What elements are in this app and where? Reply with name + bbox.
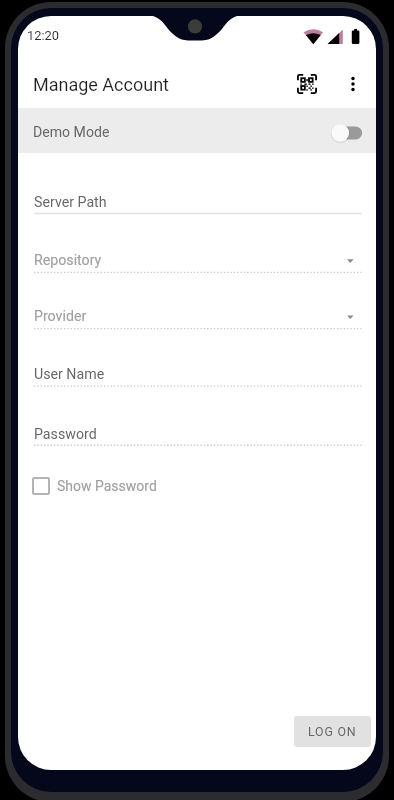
button[interactable] (34, 414, 362, 452)
button[interactable] (34, 355, 362, 393)
button[interactable] (34, 183, 362, 221)
button[interactable]: Scan QR code (285, 62, 329, 106)
staticText: Demo Mode (33, 124, 110, 141)
button[interactable]: LOG ON (294, 716, 371, 747)
button[interactable]: Demo Mode (18, 108, 376, 153)
button[interactable]: Show Password (32, 473, 157, 499)
staticText: Provider (34, 308, 87, 325)
staticText: Show Password (57, 478, 157, 494)
staticText: Password (34, 426, 97, 443)
staticText: User Name (34, 366, 105, 383)
button[interactable]: More options (331, 62, 375, 106)
staticText: LOG ON (308, 724, 357, 739)
staticText: Server Path (34, 194, 107, 211)
staticText: Repository (34, 252, 102, 269)
staticText: 12:20 (27, 28, 60, 43)
button[interactable] (34, 241, 362, 279)
staticText: Manage Account (33, 74, 169, 95)
button[interactable] (34, 298, 362, 336)
